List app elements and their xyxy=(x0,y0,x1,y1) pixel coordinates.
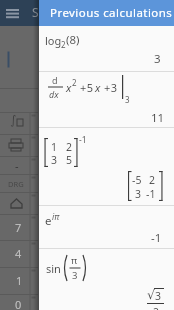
button[interactable] xyxy=(0,214,29,240)
staticText: log xyxy=(45,33,62,48)
staticText: (8) xyxy=(66,32,80,48)
staticText: DRG xyxy=(8,179,24,189)
button[interactable] xyxy=(39,205,174,248)
staticText: 4 xyxy=(15,246,22,261)
button[interactable] xyxy=(39,71,174,127)
staticText: π xyxy=(71,254,78,267)
staticText: x xyxy=(66,80,72,95)
button[interactable] xyxy=(0,112,29,134)
staticText: x xyxy=(95,80,101,95)
staticText: -1 xyxy=(79,134,87,146)
staticText: 3 xyxy=(51,153,58,167)
button[interactable] xyxy=(39,0,174,26)
staticText: +3 xyxy=(104,80,118,95)
staticText: dx xyxy=(49,88,59,100)
button[interactable] xyxy=(0,156,29,174)
staticText: 2 xyxy=(72,77,77,88)
staticText: +5 xyxy=(80,80,94,95)
button[interactable] xyxy=(0,240,29,267)
button[interactable] xyxy=(39,248,174,310)
staticText: 1 xyxy=(51,140,58,154)
button[interactable] xyxy=(0,294,29,310)
staticText: 3 xyxy=(135,187,142,201)
button[interactable] xyxy=(0,192,29,214)
staticText: 1 xyxy=(16,273,23,288)
staticText: 3 xyxy=(154,51,161,67)
staticText: 7 xyxy=(15,220,22,235)
button[interactable] xyxy=(0,0,40,26)
staticText: -1 xyxy=(151,230,162,246)
button[interactable] xyxy=(0,174,29,192)
staticText: -5 xyxy=(132,173,142,187)
staticText: S xyxy=(32,4,39,20)
staticText: 11 xyxy=(151,110,165,126)
staticText: -1 xyxy=(146,187,156,201)
staticText: 3 xyxy=(125,94,130,105)
staticText: d xyxy=(52,74,58,86)
staticText: 3 xyxy=(72,269,78,282)
staticText: iπ xyxy=(52,211,60,223)
staticText: sin xyxy=(46,261,61,276)
staticText: 5 xyxy=(66,153,73,167)
staticText: 3 xyxy=(155,289,162,303)
button[interactable] xyxy=(0,267,29,294)
staticText: Previous calculations xyxy=(50,5,173,21)
button[interactable] xyxy=(39,127,174,205)
staticText: ∫ xyxy=(10,113,17,127)
staticText: 2 xyxy=(149,173,156,187)
staticText: 2 xyxy=(66,140,73,154)
staticText: e xyxy=(45,213,52,229)
button[interactable] xyxy=(0,134,29,156)
staticText: - xyxy=(15,158,19,173)
staticText: 2 xyxy=(153,305,160,310)
staticText: 0 xyxy=(15,297,22,310)
staticText: 2 xyxy=(61,39,66,50)
button[interactable] xyxy=(39,27,174,71)
staticText: √ xyxy=(147,287,155,302)
